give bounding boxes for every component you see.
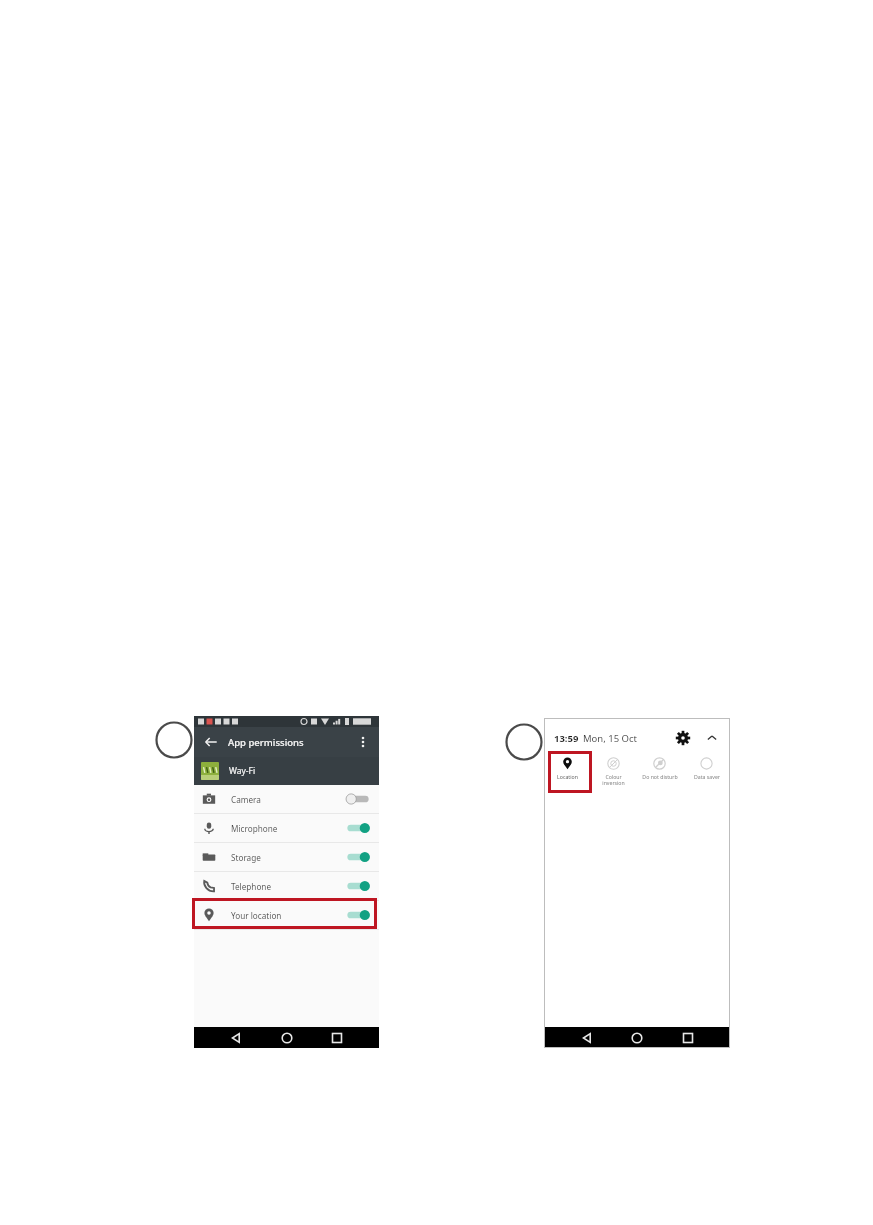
button[interactable]: Back xyxy=(200,731,222,753)
button[interactable]: Microphone permission toggle xyxy=(345,820,371,836)
staticText: App permissions xyxy=(228,736,304,749)
staticText: Mon, 15 Oct xyxy=(583,732,637,745)
button[interactable]: Storage xyxy=(194,843,379,871)
button[interactable]: Way-Fi xyxy=(194,757,379,785)
button[interactable]: Collapse xyxy=(704,730,720,746)
button[interactable]: Your location xyxy=(194,901,379,929)
button[interactable]: Step 2 xyxy=(505,723,543,761)
staticText: 13:59 xyxy=(554,732,579,745)
button[interactable]: Recents xyxy=(329,1030,345,1046)
button[interactable]: Microphone xyxy=(194,814,379,842)
button[interactable]: Do not disturb xyxy=(636,753,683,789)
button[interactable]: Location xyxy=(544,753,590,789)
button[interactable]: Recents xyxy=(680,1030,696,1046)
staticText: Storage xyxy=(231,852,261,863)
button[interactable]: More options xyxy=(353,732,373,752)
button[interactable]: Home xyxy=(629,1030,645,1046)
staticText: Camera xyxy=(231,794,261,805)
button[interactable]: Camera xyxy=(194,785,379,813)
staticText: Location xyxy=(557,773,578,780)
button[interactable]: Telephone xyxy=(194,872,379,900)
staticText: Colour inversion xyxy=(602,773,625,786)
button[interactable]: Settings xyxy=(674,729,692,747)
staticText: Telephone xyxy=(231,881,272,892)
staticText: Data saver xyxy=(694,773,720,780)
button[interactable]: Step 1 xyxy=(155,721,193,759)
button[interactable]: Your location permission toggle xyxy=(345,907,371,923)
staticText: Microphone xyxy=(231,823,278,834)
button[interactable]: Telephone permission toggle xyxy=(345,878,371,894)
staticText: Your location xyxy=(231,910,282,921)
button[interactable]: Data saver xyxy=(683,753,730,789)
staticText: Way-Fi xyxy=(229,765,256,777)
button[interactable]: Camera permission toggle xyxy=(345,791,371,807)
button[interactable]: Home xyxy=(279,1030,295,1046)
staticText: Do not disturb xyxy=(642,773,678,780)
button[interactable]: Colour inversion xyxy=(590,753,636,789)
button[interactable]: Back xyxy=(579,1030,595,1046)
button[interactable]: Storage permission toggle xyxy=(345,849,371,865)
button[interactable]: Back xyxy=(228,1030,244,1046)
